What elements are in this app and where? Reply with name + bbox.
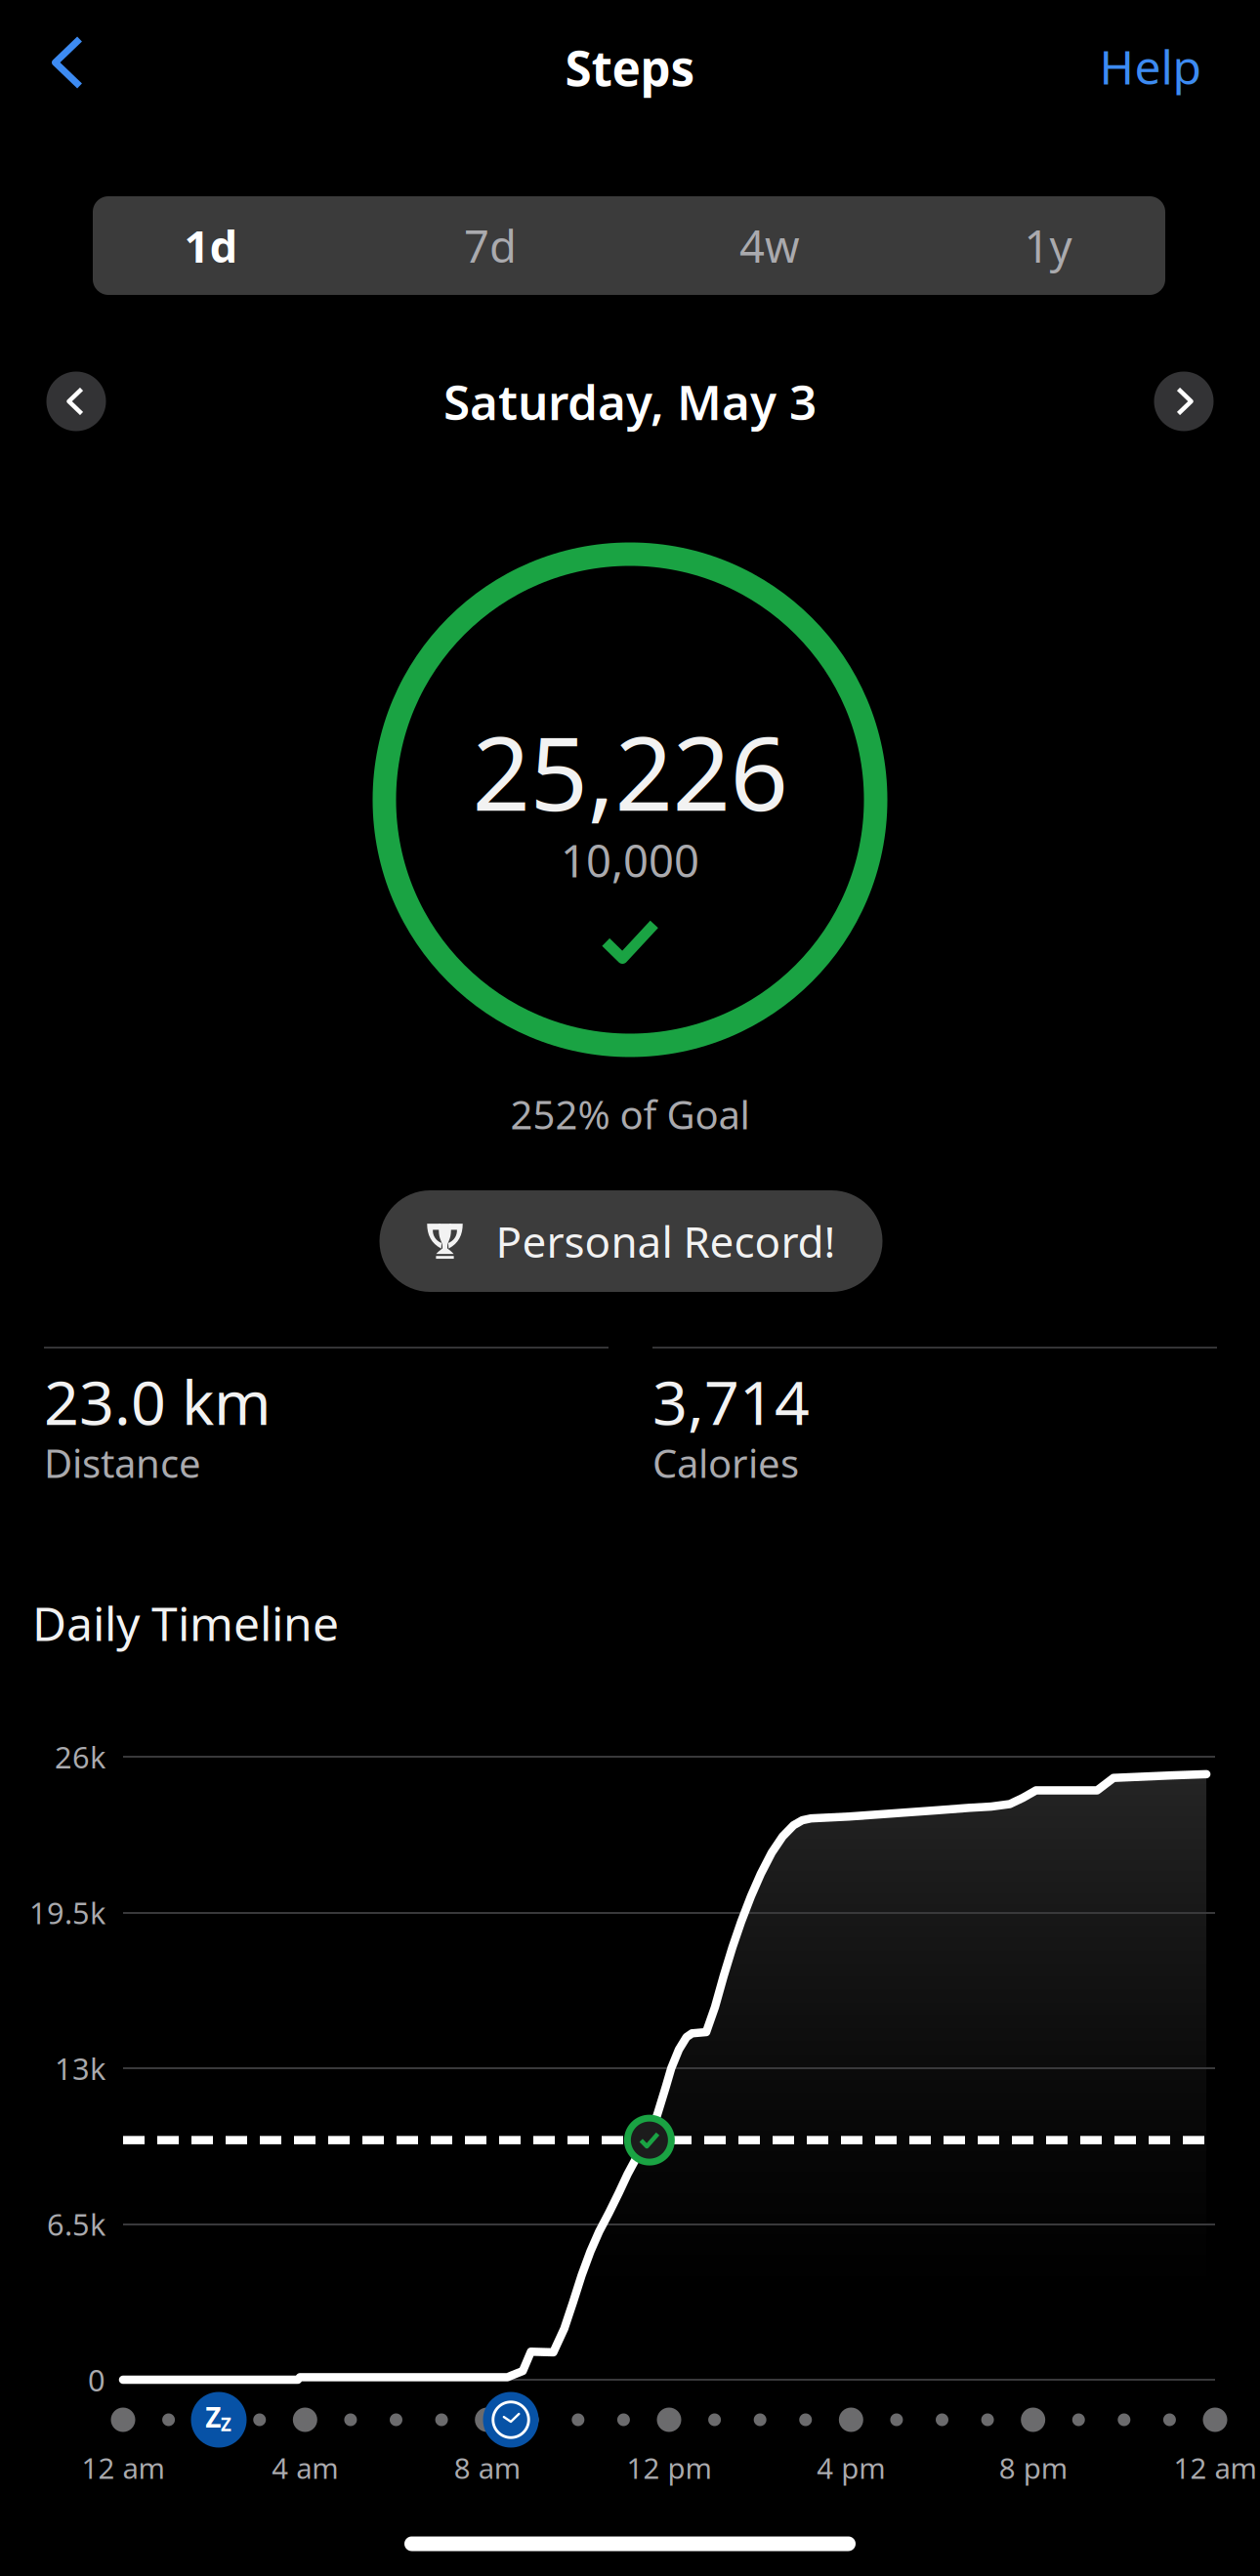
button[interactable]: Next day: [1147, 364, 1221, 438]
staticText: Steps: [565, 35, 695, 99]
staticText: Personal Record!: [496, 1213, 836, 1270]
button[interactable]: 7d: [357, 196, 624, 295]
staticText: 10,000: [561, 831, 699, 890]
staticText: 25,226: [472, 704, 788, 839]
button[interactable]: 1y: [914, 196, 1182, 295]
staticText: Daily Timeline: [32, 1592, 339, 1654]
staticText: Calories: [652, 1437, 799, 1489]
staticText: Z: [221, 2412, 231, 2436]
staticText: 1d: [184, 216, 238, 275]
staticText: Saturday, May 3: [443, 369, 817, 433]
staticText: 19.5k: [29, 1893, 105, 1932]
staticText: 4w: [739, 216, 800, 275]
button[interactable]: 1d: [77, 196, 345, 295]
staticText: 3,714: [652, 1361, 810, 1442]
staticText: 6.5k: [47, 2204, 105, 2244]
staticText: 252% of Goal: [510, 1088, 750, 1140]
staticText: 12 am: [1174, 2449, 1257, 2487]
button[interactable]: Help: [1092, 25, 1210, 107]
staticText: 26k: [55, 1737, 105, 1777]
button[interactable]: Personal Record!: [379, 1190, 882, 1292]
staticText: 8 am: [454, 2449, 520, 2487]
button[interactable]: Back: [23, 18, 111, 107]
staticText: 4 pm: [817, 2449, 885, 2487]
staticText: Z: [205, 2399, 221, 2435]
staticText: 23.0 km: [44, 1361, 272, 1442]
button[interactable]: 4w: [636, 196, 903, 295]
staticText: 4 am: [272, 2449, 338, 2487]
staticText: 8 pm: [999, 2449, 1067, 2487]
staticText: 12 am: [82, 2449, 165, 2487]
staticText: 1y: [1024, 216, 1072, 275]
staticText: 7d: [464, 216, 517, 275]
button[interactable]: Previous day: [39, 364, 113, 438]
staticText: Help: [1099, 35, 1202, 97]
staticText: Distance: [44, 1437, 201, 1489]
staticText: 13k: [55, 2048, 105, 2088]
staticText: 0: [88, 2360, 105, 2400]
staticText: 12 pm: [627, 2449, 712, 2487]
